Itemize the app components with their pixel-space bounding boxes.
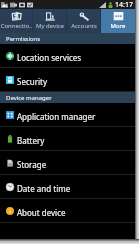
staticText: 14:17: [115, 0, 133, 9]
button[interactable]: Battery: [0, 127, 135, 150]
button[interactable]: Date and time: [0, 175, 135, 198]
staticText: Storage: [17, 159, 47, 170]
staticText: Permissions: [6, 35, 41, 43]
button[interactable]: My device: [33, 9, 67, 33]
staticText: Location services: [17, 52, 82, 63]
button[interactable]: Connections: [0, 9, 33, 33]
staticText: Device manager: [6, 94, 52, 102]
staticText: Security: [17, 76, 48, 87]
staticText: About device: [17, 207, 66, 218]
button[interactable]: Location services: [0, 44, 135, 67]
other: Connections: [11, 12, 22, 21]
button[interactable]: Accounts: [67, 9, 101, 33]
button[interactable]: Security: [0, 68, 135, 91]
staticText: Accounts: [67, 22, 101, 30]
staticText: My device: [33, 22, 67, 30]
other: Accounts: [79, 12, 90, 21]
staticText: More: [101, 22, 135, 30]
other: More: [113, 12, 124, 21]
staticText: Connectio..: [0, 22, 33, 30]
other: My device: [45, 12, 56, 21]
staticText: Application manager: [17, 111, 96, 122]
button[interactable]: Storage: [0, 151, 135, 174]
staticText: Battery: [17, 135, 45, 146]
button[interactable]: Application manager: [0, 103, 135, 126]
staticText: Date and time: [17, 183, 71, 194]
button[interactable]: More: [101, 9, 135, 33]
button[interactable]: About device: [0, 199, 135, 222]
